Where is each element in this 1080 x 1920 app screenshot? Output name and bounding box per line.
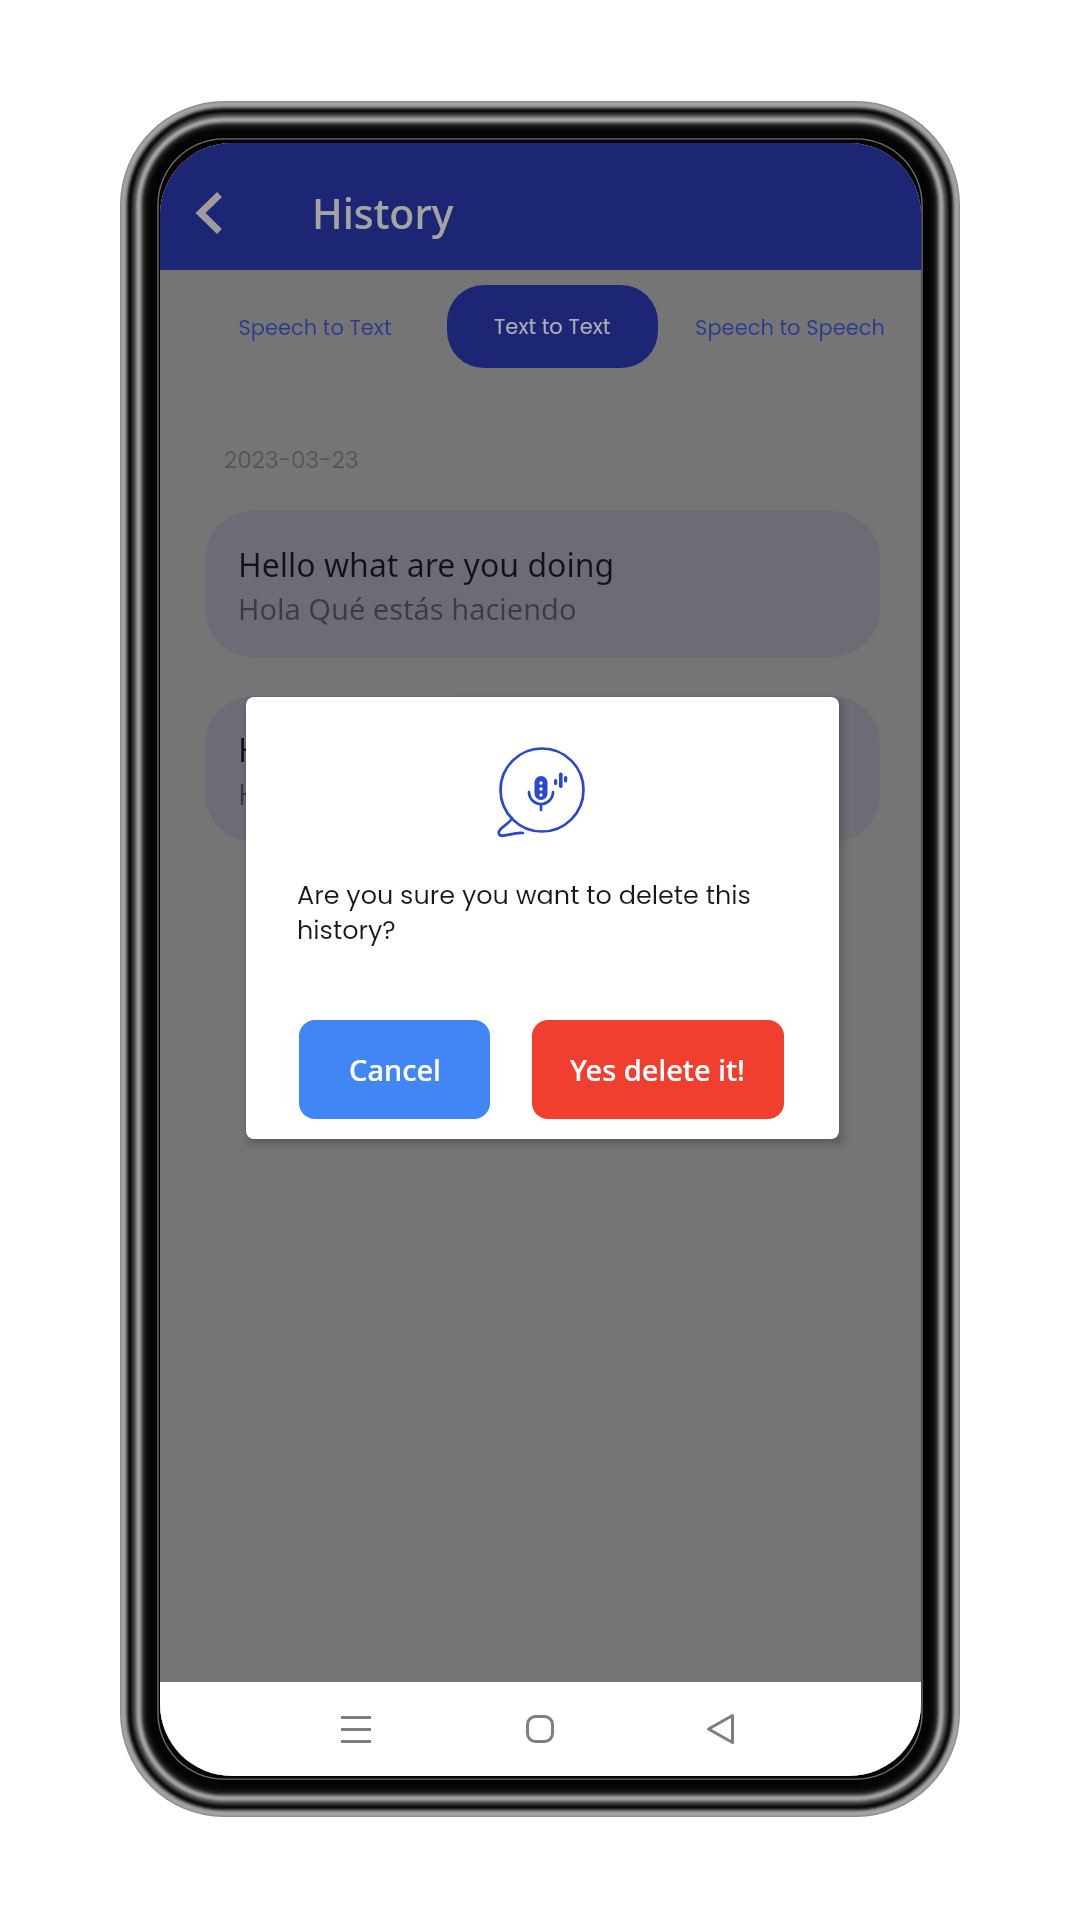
- button[interactable]: Back: [684, 1693, 756, 1765]
- staticText: Hola Qué estás haciendo: [238, 589, 577, 628]
- staticText: Cancel: [349, 1050, 441, 1089]
- staticText: Text to Text: [494, 312, 611, 341]
- button[interactable]: Yes delete it!: [532, 1020, 784, 1119]
- staticText: Yes delete it!: [570, 1050, 746, 1089]
- button[interactable]: Back: [177, 181, 241, 245]
- button[interactable]: Home: [504, 1693, 576, 1765]
- button[interactable]: Cancel: [299, 1020, 490, 1119]
- staticText: History: [312, 185, 454, 241]
- staticText: Hola Qué estás haciendo: [238, 774, 577, 813]
- button[interactable]: Speech to Speech: [670, 291, 909, 363]
- staticText: Speech to Text: [238, 313, 392, 342]
- staticText: Are you sure you want to delete this his…: [297, 877, 767, 948]
- button[interactable]: Text to Text: [447, 285, 658, 368]
- button[interactable]: Speech to Text: [212, 291, 418, 363]
- button[interactable]: Hello what are you doing: [205, 511, 880, 657]
- staticText: Hello what are you doing: [238, 543, 615, 587]
- staticText: Speech to Speech: [695, 313, 885, 342]
- button[interactable]: Recent apps: [320, 1693, 392, 1765]
- staticText: 2023-03-23: [224, 444, 359, 476]
- staticText: Hello what are you doing: [238, 728, 615, 772]
- button[interactable]: Hello what are you doing: [205, 696, 880, 842]
